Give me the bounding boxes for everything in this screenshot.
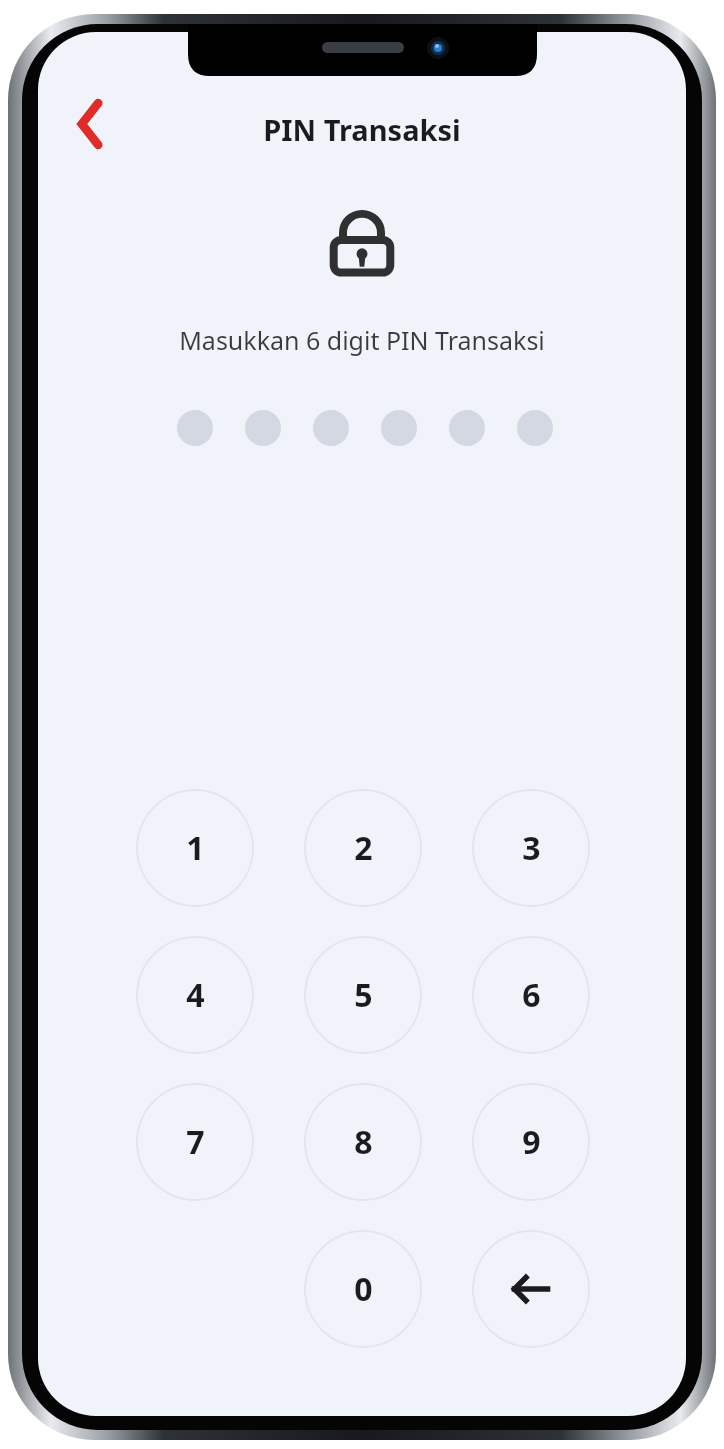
- staticText: 1: [186, 826, 205, 870]
- staticText: 7: [186, 1120, 205, 1164]
- button[interactable]: Back: [56, 90, 124, 158]
- button[interactable]: 8: [304, 1083, 422, 1201]
- staticText: 9: [522, 1120, 541, 1164]
- button[interactable]: 9: [472, 1083, 590, 1201]
- staticText: 4: [186, 973, 205, 1017]
- staticText: 2: [354, 826, 373, 870]
- staticText: 0: [354, 1267, 373, 1311]
- button[interactable]: 5: [304, 936, 422, 1054]
- staticText: 8: [354, 1120, 373, 1164]
- button[interactable]: Backspace: [472, 1230, 590, 1348]
- button[interactable]: 7: [136, 1083, 254, 1201]
- button[interactable]: 4: [136, 936, 254, 1054]
- button[interactable]: 6: [472, 936, 590, 1054]
- staticText: 5: [354, 973, 373, 1017]
- staticText: 6: [522, 973, 541, 1017]
- button[interactable]: 3: [472, 789, 590, 907]
- button[interactable]: 0: [304, 1230, 422, 1348]
- button[interactable]: 2: [304, 789, 422, 907]
- staticText: 3: [522, 826, 541, 870]
- staticText: PIN Transaksi: [263, 110, 461, 149]
- staticText: Masukkan 6 digit PIN Transaksi: [179, 323, 545, 357]
- button[interactable]: 1: [136, 789, 254, 907]
